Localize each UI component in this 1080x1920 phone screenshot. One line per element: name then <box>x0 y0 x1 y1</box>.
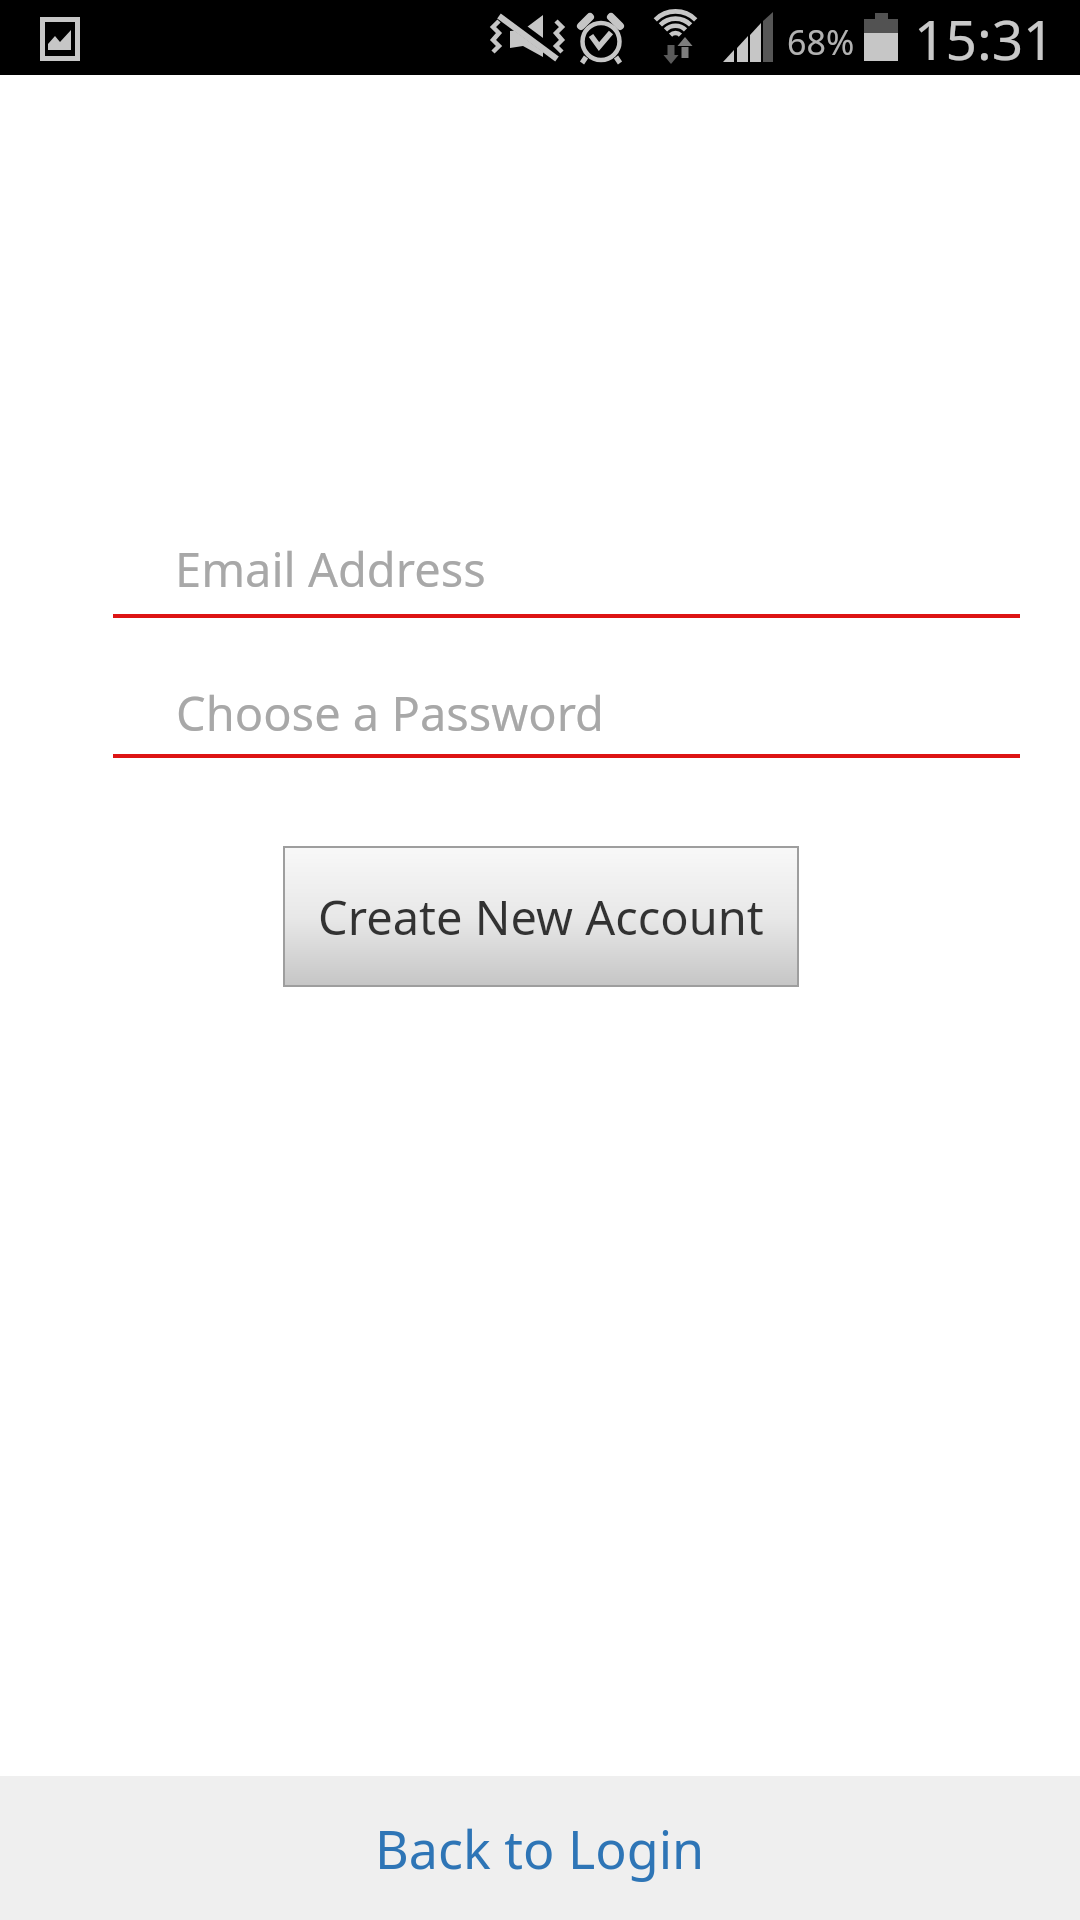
staticText: 15:31 <box>914 1 1055 76</box>
button[interactable]: Create New Account <box>283 846 799 987</box>
staticText: Back to Login <box>375 1813 705 1884</box>
staticText: 68% <box>787 19 855 65</box>
button[interactable]: Back to Login <box>0 1776 1080 1920</box>
staticText: Choose a Password <box>176 681 605 745</box>
staticText: Create New Account <box>318 885 764 949</box>
staticText: Email Address <box>175 537 486 601</box>
